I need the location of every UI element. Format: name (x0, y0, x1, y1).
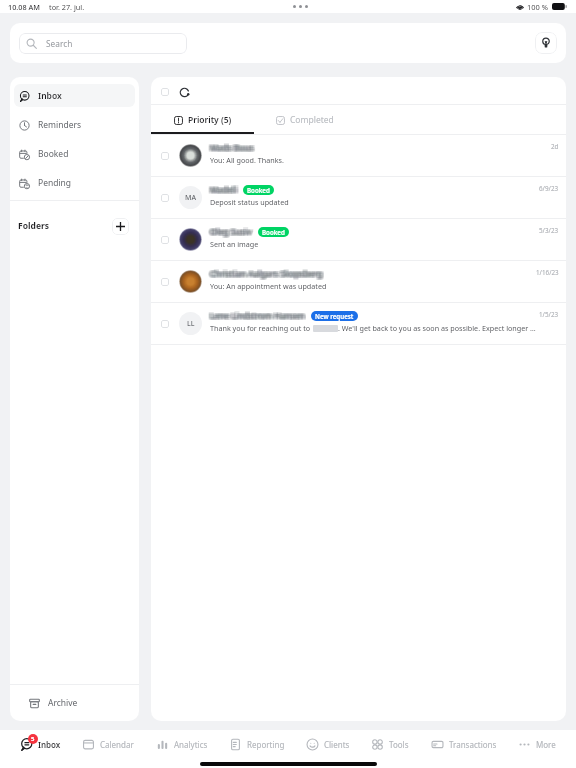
staticText: Oleg Susiv (212, 227, 254, 238)
button[interactable]: Booked (14, 142, 135, 165)
staticText: Lene Lindstrom Hansen (210, 310, 305, 321)
staticText: Oleg Susiv (209, 225, 251, 236)
button[interactable]: Search (19, 33, 187, 54)
button[interactable]: Oleg Susiv (151, 219, 566, 260)
staticText: Deposit status updated (210, 197, 289, 207)
staticText: Mads Buus (210, 143, 254, 154)
staticText: Mads Buus (208, 141, 252, 152)
button[interactable]: Pending (14, 171, 135, 194)
button[interactable]: 5 (19, 738, 62, 751)
staticText: Mads Buus (211, 142, 255, 153)
staticText: Booked (247, 186, 270, 194)
staticText: Christian Aalgars Skopsberg (212, 269, 325, 280)
staticText: . We'll get back to you as soon as possi… (338, 323, 537, 333)
button[interactable]: Clients (305, 738, 351, 751)
staticText: 2d (551, 142, 559, 151)
staticText: Lene Lindstrom Hansen (208, 311, 303, 322)
staticText: Analytics (174, 739, 208, 750)
staticText: Oleg Susiv (209, 227, 251, 238)
staticText: Lene Lindstrom Hansen (212, 310, 307, 321)
staticText: Christian Aalgars Skopsberg (210, 267, 323, 278)
staticText: Christian Aalgars Skopsberg (211, 267, 324, 278)
staticText: Tools (389, 739, 409, 750)
button[interactable]: LL (151, 303, 566, 344)
staticText: Christian Aalgars Skopsberg (209, 267, 322, 278)
staticText: Completed (290, 114, 334, 126)
staticText: Christian Aalgars Skopsberg (208, 268, 321, 279)
staticText: 10.08 AM (8, 2, 41, 12)
staticText: Lene Lindstrom Hansen (212, 309, 307, 320)
staticText: Christian Aalgars Skopsberg (212, 267, 325, 278)
button[interactable]: Reminders (14, 113, 135, 136)
button[interactable]: Calendar (81, 738, 135, 751)
button[interactable]: Select all (161, 88, 169, 96)
staticText: Search (46, 38, 73, 49)
button[interactable]: Christian Aalgars Skopsberg (151, 261, 566, 302)
staticText: Madeli (210, 184, 237, 195)
button[interactable]: MA (151, 177, 566, 218)
staticText: Booked (262, 228, 285, 236)
staticText: Oleg Susiv (208, 225, 250, 236)
staticText: Mads Buus (209, 143, 253, 154)
staticText: 100 % (527, 2, 549, 12)
button[interactable]: Transactions (430, 738, 498, 751)
button[interactable]: Reporting (228, 738, 286, 751)
staticText: Lene Lindstrom Hansen (211, 311, 306, 322)
button[interactable]: Tools (370, 738, 410, 751)
staticText: 1/5/23 (539, 310, 559, 319)
staticText: Madeli (208, 183, 235, 194)
button[interactable]: Inbox (14, 84, 135, 107)
staticText: 5 (31, 735, 35, 743)
staticText: You: An appointment was updated (210, 281, 327, 291)
staticText: Mads Buus (212, 142, 256, 153)
staticText: Madeli (209, 184, 236, 195)
staticText: Inbox (38, 90, 62, 102)
staticText: Christian Aalgars Skopsberg (211, 268, 324, 279)
staticText: Christian Aalgars Skopsberg (209, 269, 322, 280)
button[interactable]: Archive (10, 685, 139, 721)
staticText: Mads Buus (212, 143, 256, 154)
staticText: Calendar (100, 739, 134, 750)
staticText: Oleg Susiv (211, 227, 253, 238)
button[interactable]: Refresh (178, 86, 190, 98)
staticText: Mads Buus (210, 141, 254, 152)
staticText: Reminders (38, 119, 82, 131)
staticText: Oleg Susiv (209, 226, 251, 237)
staticText: 6/9/23 (539, 184, 559, 193)
staticText: Lene Lindstrom Hansen (211, 310, 306, 321)
staticText: Inbox (38, 739, 61, 750)
staticText: Christian Aalgars Skopsberg (212, 268, 325, 279)
staticText: Christian Aalgars Skopsberg (208, 267, 321, 278)
staticText: Madeli (208, 185, 235, 196)
staticText: Madeli (209, 183, 236, 194)
staticText: Madeli (211, 183, 238, 194)
staticText: LL (187, 319, 195, 329)
button[interactable]: Add folder (112, 218, 129, 235)
staticText: Oleg Susiv (210, 226, 252, 237)
button[interactable]: More (517, 738, 557, 751)
staticText: Oleg Susiv (211, 226, 253, 237)
staticText: Lene Lindstrom Hansen (210, 309, 305, 320)
button[interactable]: Tips (535, 32, 557, 54)
staticText: Mads Buus (210, 142, 254, 153)
staticText: Oleg Susiv (212, 225, 254, 236)
staticText: Madeli (212, 184, 239, 195)
staticText: Mads Buus (209, 141, 253, 152)
button[interactable]: Priority (5) (151, 105, 254, 134)
staticText: Lene Lindstrom Hansen (208, 309, 303, 320)
staticText: Mads Buus (212, 141, 256, 152)
button[interactable]: Completed (254, 105, 356, 134)
staticText: Lene Lindstrom Hansen (209, 310, 304, 321)
button[interactable]: Mads Buus (151, 135, 566, 176)
staticText: Oleg Susiv (208, 226, 250, 237)
staticText: Madeli (208, 184, 235, 195)
staticText: Oleg Susiv (211, 225, 253, 236)
staticText: Madeli (212, 183, 239, 194)
staticText: Oleg Susiv (212, 226, 254, 237)
staticText: Madeli (211, 184, 238, 195)
button[interactable]: Analytics (155, 738, 209, 751)
staticText: Pending (38, 177, 72, 189)
staticText: You: All good. Thanks. (210, 155, 284, 165)
staticText: Mads Buus (208, 143, 252, 154)
staticText: Mads Buus (211, 141, 255, 152)
